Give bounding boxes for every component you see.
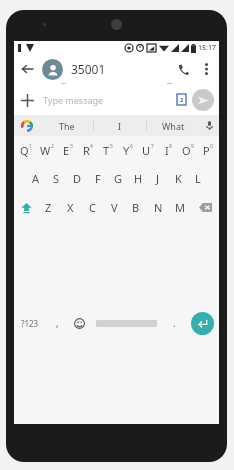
button[interactable]: Google: [14, 115, 40, 136]
staticText: C: [89, 200, 96, 215]
staticText: D: [73, 171, 82, 186]
staticText: 0: [210, 143, 213, 150]
staticText: Y: [123, 143, 130, 158]
button[interactable]: Back: [14, 56, 40, 82]
staticText: P: [203, 143, 210, 158]
staticText: Q: [20, 143, 29, 158]
button[interactable]: M: [169, 192, 191, 222]
staticText: J: [156, 171, 160, 186]
button[interactable]: ?123: [14, 222, 46, 424]
button[interactable]: I: [158, 136, 178, 164]
button[interactable]: C: [81, 192, 103, 222]
button[interactable]: N: [147, 192, 169, 222]
staticText: What: [162, 120, 185, 132]
staticText: A: [32, 171, 40, 186]
button[interactable]: Call: [170, 56, 196, 82]
button[interactable]: P: [198, 136, 218, 164]
staticText: V: [111, 200, 118, 215]
button[interactable]: Y: [118, 136, 138, 164]
button[interactable]: J: [148, 164, 168, 192]
staticText: 3: [70, 143, 73, 150]
button[interactable]: D: [67, 164, 88, 192]
button[interactable]: Send: [192, 89, 214, 111]
staticText: H: [134, 171, 143, 186]
button[interactable]: O: [178, 136, 198, 164]
staticText: Type message: [43, 94, 104, 106]
staticText: S: [53, 171, 60, 186]
staticText: T: [103, 143, 110, 158]
button[interactable]: Emoji: [68, 222, 90, 424]
button[interactable]: I: [94, 115, 146, 136]
button[interactable]: H: [128, 164, 148, 192]
staticText: X: [67, 200, 74, 215]
staticText: 8: [169, 143, 172, 150]
staticText: O: [182, 143, 191, 158]
button[interactable]: The: [40, 115, 93, 136]
staticText: 6: [130, 143, 133, 150]
button[interactable]: Enter: [185, 222, 219, 424]
staticText: 1: [29, 143, 32, 150]
button[interactable]: E: [57, 136, 78, 164]
staticText: 2: [51, 143, 54, 150]
button[interactable]: S: [46, 164, 67, 192]
staticText: F: [95, 171, 101, 186]
staticText: B: [132, 200, 140, 215]
staticText: .: [173, 316, 176, 330]
button[interactable]: T: [98, 136, 118, 164]
button[interactable]: L: [188, 164, 208, 192]
staticText: N: [154, 200, 163, 215]
button[interactable]: Backspace: [191, 192, 219, 222]
button[interactable]: Shift: [14, 192, 38, 222]
staticText: 2: [180, 96, 184, 104]
staticText: L: [195, 171, 201, 186]
staticText: ,: [56, 316, 59, 330]
staticText: 5: [110, 143, 113, 150]
button[interactable]: Q: [15, 136, 36, 164]
button[interactable]: F: [88, 164, 108, 192]
staticText: U: [142, 143, 151, 158]
button[interactable]: Z: [38, 192, 59, 222]
button[interactable]: W: [36, 136, 57, 164]
staticText: The: [59, 120, 75, 132]
button[interactable]: More options: [196, 59, 216, 79]
staticText: M: [175, 200, 185, 215]
staticText: 15:17: [198, 43, 216, 53]
button[interactable]: Add attachment: [14, 87, 40, 113]
staticText: I: [118, 120, 122, 132]
staticText: ?123: [21, 318, 39, 329]
staticText: E: [63, 143, 70, 158]
button[interactable]: U: [138, 136, 158, 164]
button[interactable]: B: [125, 192, 147, 222]
staticText: I: [165, 143, 169, 158]
button[interactable]: Space: [90, 222, 163, 424]
button[interactable]: SIM 2: [177, 94, 186, 105]
button[interactable]: X: [59, 192, 81, 222]
button[interactable]: G: [108, 164, 128, 192]
staticText: 35001: [71, 61, 106, 77]
staticText: 4: [90, 143, 93, 150]
button[interactable]: A: [25, 164, 46, 192]
button[interactable]: Contact avatar: [42, 59, 63, 80]
button[interactable]: What: [147, 115, 199, 136]
button[interactable]: K: [168, 164, 188, 192]
button[interactable]: Voice input: [199, 115, 219, 136]
staticText: K: [175, 171, 182, 186]
staticText: 9: [191, 143, 194, 150]
staticText: R: [83, 143, 90, 158]
button[interactable]: V: [103, 192, 125, 222]
staticText: Z: [45, 200, 52, 215]
staticText: W: [40, 143, 51, 158]
staticText: 7: [151, 143, 154, 150]
staticText: G: [114, 171, 123, 186]
button[interactable]: R: [78, 136, 98, 164]
